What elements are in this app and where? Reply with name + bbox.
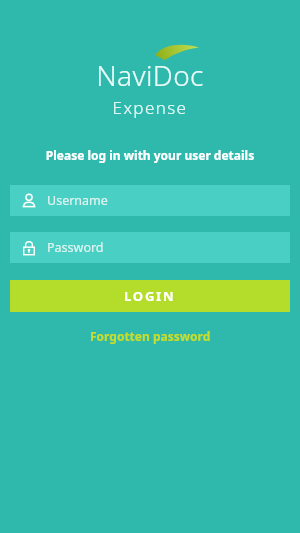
staticText: Password (47, 239, 104, 256)
other: Username (21, 193, 37, 209)
button[interactable]: Username (10, 185, 290, 216)
button[interactable]: LOGIN (10, 280, 290, 312)
staticText: LOGIN (124, 287, 176, 305)
staticText: Please log in with your user details (0, 147, 300, 163)
staticText: NaviDoc (0, 56, 300, 94)
staticText: Forgotten password (90, 328, 211, 344)
other: Password (21, 240, 37, 256)
staticText: Expense (0, 96, 300, 119)
button[interactable]: Forgotten password (78, 324, 223, 348)
button[interactable]: Password (10, 232, 290, 263)
staticText: Username (47, 192, 108, 209)
